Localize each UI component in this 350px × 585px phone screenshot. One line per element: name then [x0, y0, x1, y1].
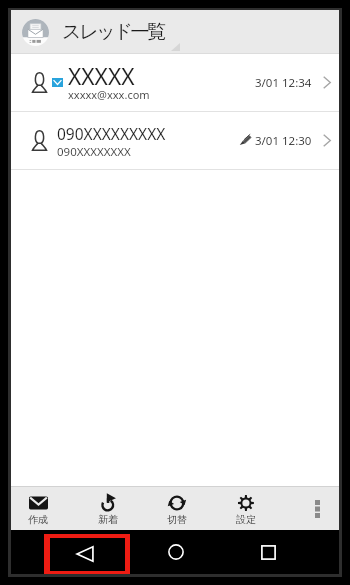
- button[interactable]: More options: [292, 487, 342, 530]
- staticText: 作成: [28, 513, 48, 526]
- staticText: 設定: [236, 513, 256, 526]
- staticText: 090XXXXXXXX: [57, 144, 131, 160]
- button[interactable]: Recents: [238, 530, 298, 574]
- button[interactable]: Home: [146, 530, 206, 574]
- button[interactable]: 新着: [86, 487, 130, 530]
- button[interactable]: 作成: [16, 487, 60, 530]
- button[interactable]: 設定: [224, 487, 268, 530]
- staticText: XXXXX: [68, 61, 135, 92]
- button[interactable]: XXXXX: [11, 54, 339, 111]
- button[interactable]: 090XXXXXXXXX: [11, 112, 339, 169]
- staticText: 切替: [167, 513, 187, 526]
- staticText: 090XXXXXXXXX: [57, 123, 166, 144]
- staticText: xxxxx@xxx.com: [68, 87, 150, 102]
- button[interactable]: Back: [44, 534, 130, 574]
- staticText: 新着: [98, 513, 118, 526]
- staticText: スレッド一覧: [62, 20, 164, 44]
- button[interactable]: 切替: [155, 487, 199, 530]
- staticText: 3/01 12:30: [255, 133, 312, 149]
- staticText: 3/01 12:34: [255, 75, 312, 91]
